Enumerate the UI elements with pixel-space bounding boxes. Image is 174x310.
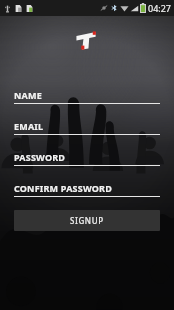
button[interactable]: CONFIRM PASSWORD <box>14 182 160 197</box>
staticText: PASSWORD <box>14 151 66 163</box>
button[interactable]: NAME <box>14 89 160 104</box>
staticText: EMAIL <box>14 120 44 132</box>
staticText: SIGNUP <box>70 215 104 226</box>
button[interactable]: EMAIL <box>14 120 160 135</box>
staticText: 04:27 <box>148 2 172 14</box>
staticText: CONFIRM PASSWORD <box>14 182 112 194</box>
staticText: NAME <box>14 89 42 101</box>
button[interactable]: SIGNUP <box>14 210 160 231</box>
button[interactable]: PASSWORD <box>14 151 160 166</box>
